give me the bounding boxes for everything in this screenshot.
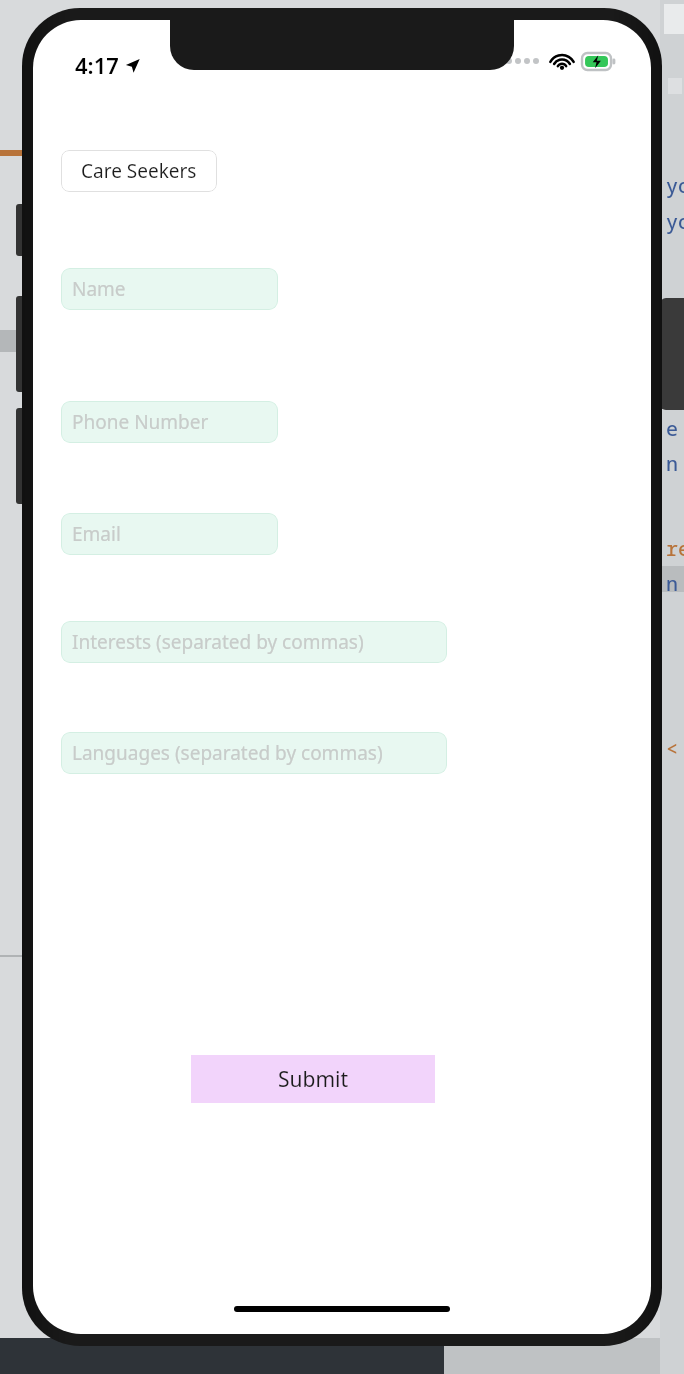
staticText: e bbox=[666, 415, 678, 442]
button[interactable]: Email bbox=[61, 513, 278, 555]
button[interactable]: Languages (separated by commas) bbox=[61, 732, 447, 774]
staticText: Name bbox=[72, 276, 126, 302]
staticText: Phone Number bbox=[72, 409, 209, 435]
staticText: yo bbox=[666, 208, 684, 235]
staticText: Interests (separated by commas) bbox=[72, 629, 364, 655]
staticText: < bbox=[666, 735, 678, 762]
staticText: Submit bbox=[278, 1065, 349, 1094]
button[interactable]: Interests (separated by commas) bbox=[61, 621, 447, 663]
button[interactable]: Name bbox=[61, 268, 278, 310]
staticText: re bbox=[666, 535, 684, 562]
staticText: yo bbox=[666, 172, 684, 199]
staticText: Care Seekers bbox=[81, 158, 197, 184]
button[interactable]: Phone Number bbox=[61, 401, 278, 443]
staticText: n bbox=[666, 450, 678, 477]
staticText: Languages (separated by commas) bbox=[72, 740, 383, 766]
staticText: n bbox=[666, 570, 678, 597]
button[interactable]: Care Seekers bbox=[61, 150, 217, 192]
staticText: Email bbox=[72, 521, 121, 547]
staticText: 4:17 bbox=[75, 50, 119, 80]
button[interactable]: Submit bbox=[191, 1055, 435, 1103]
